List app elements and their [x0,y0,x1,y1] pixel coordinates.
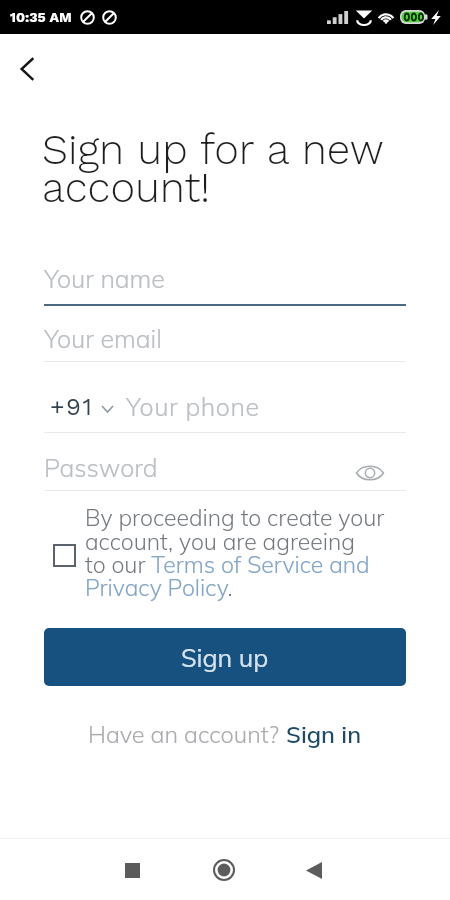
button[interactable]: Home [202,848,246,892]
staticText: Your name [44,263,165,294]
staticText: Have an account? [88,719,286,748]
staticText: Password [44,452,158,483]
button[interactable]: By proceeding to create your account, yo… [44,503,406,603]
button[interactable]: Show password [350,455,390,491]
button[interactable]: Sign up [44,628,406,686]
button[interactable]: Recents [110,848,154,892]
button[interactable]: Your email [44,323,406,362]
staticText: 10:35 AM [10,9,72,25]
staticText: Sign up [181,642,269,673]
staticText: Sign in [286,719,362,748]
staticText: Sign up for a new account! [42,125,394,212]
button[interactable]: Have an account? [88,719,362,748]
button[interactable]: Your name [44,263,406,306]
button[interactable]: Back [6,48,48,90]
button[interactable]: +91 [44,391,406,433]
button[interactable]: Back [292,848,336,892]
staticText: Your phone [126,391,260,422]
staticText: Your email [44,323,162,354]
staticText: By proceeding to create your account, yo… [85,503,405,601]
button[interactable]: Password [44,452,406,486]
staticText: +91 [50,393,94,421]
